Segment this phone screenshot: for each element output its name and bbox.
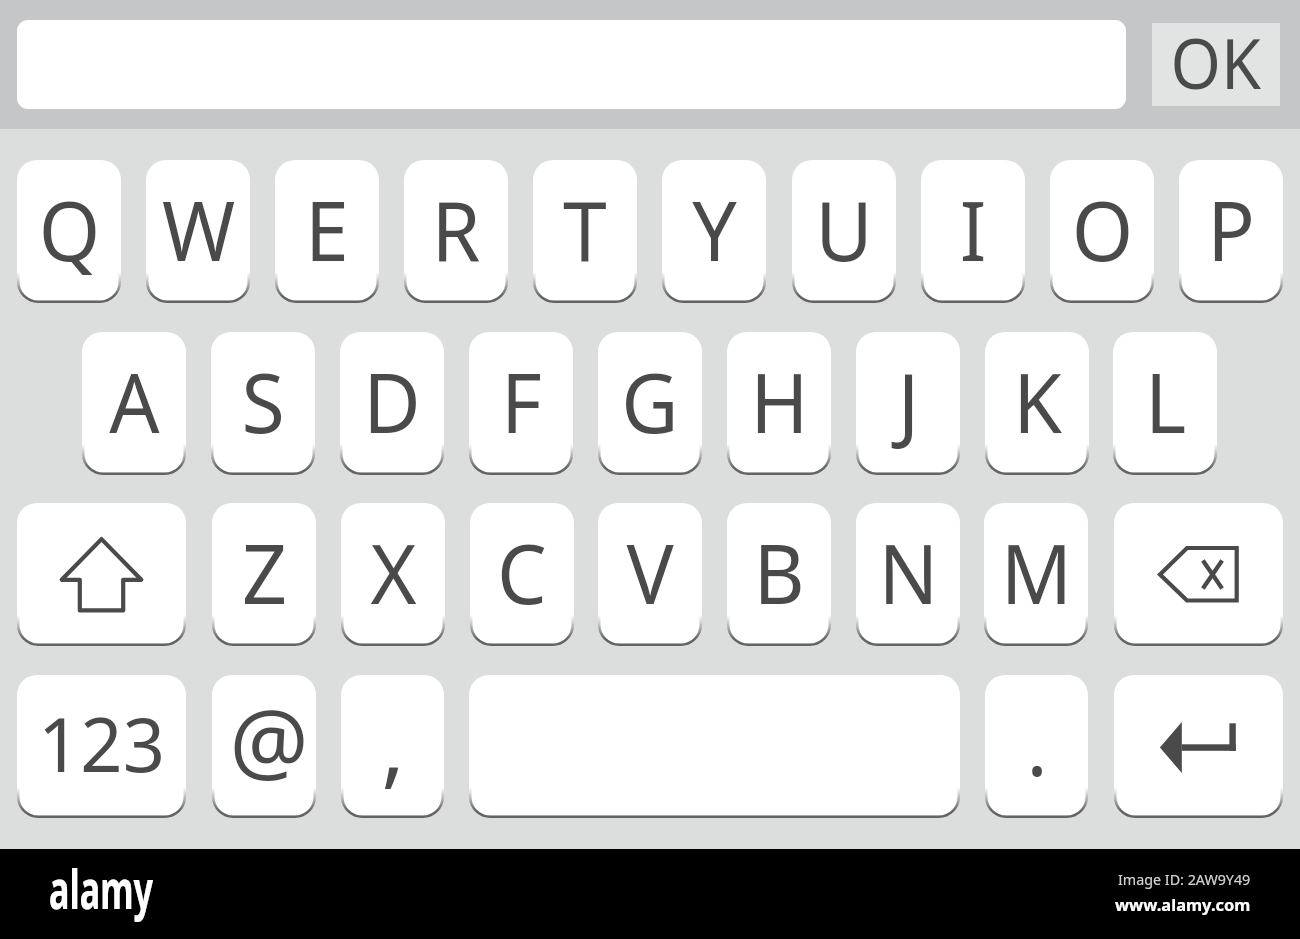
staticText: U [815, 173, 873, 285]
button[interactable]: Enter [1114, 675, 1283, 818]
staticText: I [960, 173, 986, 285]
button[interactable]: I [921, 160, 1025, 303]
staticText: @ [229, 679, 309, 799]
button[interactable]: Backspace [1114, 503, 1283, 646]
staticText: A [109, 345, 160, 457]
staticText: Q [38, 173, 101, 285]
button[interactable]: S [211, 332, 315, 475]
button[interactable]: 123 [17, 675, 186, 818]
button[interactable]: K [985, 332, 1089, 475]
button[interactable]: Y [662, 160, 766, 303]
button[interactable]: OK [1152, 23, 1280, 106]
staticText: C [497, 516, 547, 628]
button[interactable]: @ [212, 675, 316, 818]
button[interactable]: B [727, 503, 831, 646]
staticText: Image ID: 2AW9Y49 [1118, 870, 1251, 889]
staticText: M [1000, 516, 1072, 628]
button[interactable]: J [856, 332, 960, 475]
button[interactable]: , [341, 675, 444, 818]
button[interactable]: C [470, 503, 574, 646]
button[interactable]: Z [212, 503, 316, 646]
button[interactable]: Q [17, 160, 121, 303]
staticText: G [621, 345, 679, 457]
button[interactable]: X [341, 503, 445, 646]
button[interactable]: D [340, 332, 444, 475]
button[interactable]: P [1179, 160, 1283, 303]
staticText: W [161, 173, 235, 285]
button[interactable]: T [533, 160, 637, 303]
staticText: alamy [49, 852, 153, 924]
staticText: X [370, 516, 417, 628]
button[interactable]: L [1113, 332, 1217, 475]
button[interactable]: . [985, 675, 1088, 818]
button[interactable]: N [856, 503, 960, 646]
button[interactable]: V [598, 503, 702, 646]
staticText: R [431, 173, 481, 285]
staticText: D [363, 345, 421, 457]
staticText: N [878, 516, 939, 628]
button[interactable]: R [404, 160, 508, 303]
button[interactable]: Space [469, 675, 960, 818]
button[interactable]: F [469, 332, 573, 475]
staticText: V [626, 516, 674, 628]
staticText: E [305, 173, 349, 285]
staticText: . [1026, 688, 1047, 800]
staticText: Z [242, 516, 287, 628]
button[interactable]: U [792, 160, 896, 303]
staticText: S [241, 345, 285, 457]
staticText: P [1207, 173, 1255, 285]
button[interactable]: Shift [17, 503, 186, 646]
staticText: H [750, 345, 809, 457]
button[interactable]: G [598, 332, 702, 475]
button[interactable]: H [727, 332, 831, 475]
staticText: T [563, 173, 607, 285]
button[interactable]: O [1050, 160, 1154, 303]
staticText: 123 [38, 693, 165, 794]
staticText: www.alamy.com [1115, 893, 1251, 915]
staticText: Y [692, 173, 737, 285]
staticText: L [1145, 345, 1186, 457]
button[interactable]: M [984, 503, 1088, 646]
button[interactable]: E [275, 160, 379, 303]
staticText: F [501, 345, 542, 457]
button[interactable]: A [82, 332, 186, 475]
button[interactable]: W [146, 160, 250, 303]
staticText: , [381, 684, 405, 804]
staticText: B [753, 516, 805, 628]
staticText: O [1071, 173, 1134, 285]
staticText: OK [1170, 15, 1261, 98]
staticText: K [1013, 345, 1062, 457]
staticText: J [897, 345, 920, 457]
